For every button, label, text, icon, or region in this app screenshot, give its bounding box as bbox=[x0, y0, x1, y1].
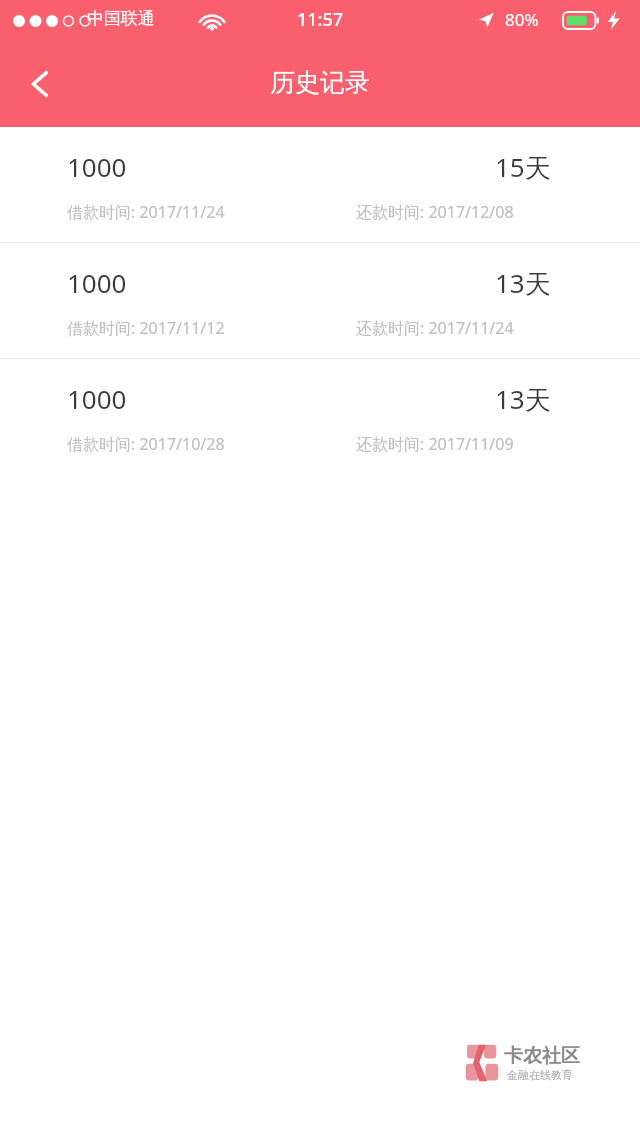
button[interactable]: 1000 bbox=[0, 127, 640, 242]
staticText: 11:57 bbox=[0, 7, 640, 32]
staticText: 还款时间: 2017/11/24 bbox=[356, 317, 514, 339]
staticText: 80% bbox=[505, 8, 539, 31]
staticText: 金融在线教育 bbox=[507, 1068, 573, 1082]
staticText: 1000 bbox=[67, 149, 127, 184]
staticText: 借款时间: 2017/10/28 bbox=[67, 433, 225, 455]
button[interactable]: 1000 bbox=[0, 359, 640, 474]
staticText: 13天 bbox=[495, 265, 551, 301]
staticText: 卡农社区 bbox=[504, 1044, 580, 1068]
button[interactable]: Back bbox=[8, 52, 72, 116]
staticText: 15天 bbox=[495, 149, 551, 185]
staticText: 1000 bbox=[67, 265, 127, 300]
staticText: 借款时间: 2017/11/24 bbox=[67, 201, 225, 223]
staticText: 还款时间: 2017/11/09 bbox=[356, 433, 514, 455]
staticText: 历史记录 bbox=[0, 67, 640, 98]
button[interactable]: 1000 bbox=[0, 243, 640, 358]
staticText: 中国联通 bbox=[87, 8, 155, 29]
staticText: 还款时间: 2017/12/08 bbox=[356, 201, 514, 223]
staticText: 1000 bbox=[67, 381, 127, 416]
staticText: 借款时间: 2017/11/12 bbox=[67, 317, 225, 339]
staticText: 13天 bbox=[495, 381, 551, 417]
